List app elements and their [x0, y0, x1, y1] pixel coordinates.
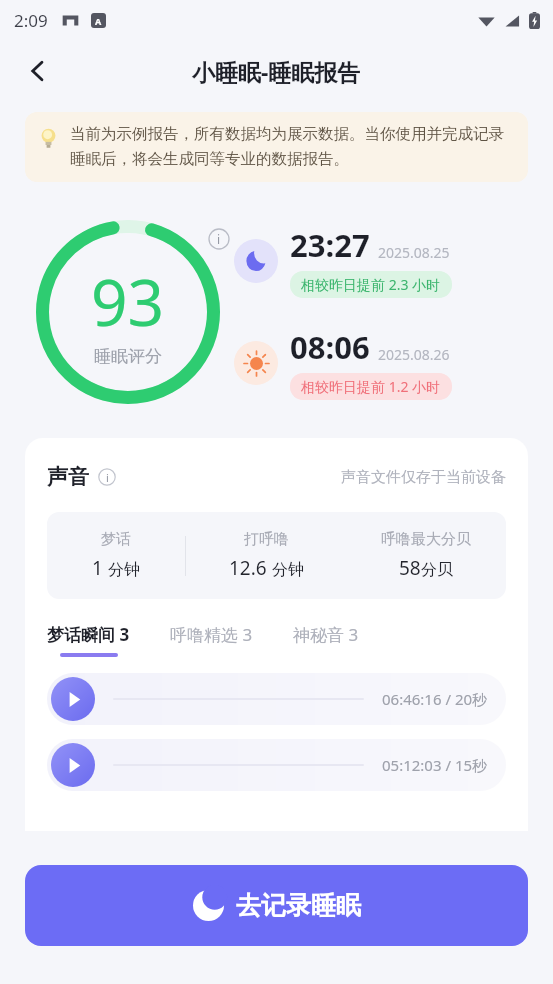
other: Play — [51, 677, 95, 721]
button[interactable]: 声音说明 — [96, 466, 118, 488]
staticText: 08:06 — [290, 326, 370, 368]
staticText: i — [217, 231, 221, 247]
staticText: A — [95, 15, 102, 27]
button[interactable]: Back — [14, 47, 62, 95]
staticText: 去记录睡眠 — [236, 890, 361, 921]
staticText: 睡眠评分 — [94, 346, 162, 367]
button[interactable]: 梦话瞬间 3 — [47, 623, 130, 657]
staticText: 05:12:03 / 15秒 — [382, 755, 488, 775]
staticText: 2025.08.25 — [378, 243, 450, 262]
staticText: 2:09 — [14, 9, 48, 32]
staticText: i — [106, 470, 109, 485]
button[interactable]: 神秘音 3 — [293, 623, 359, 657]
staticText: 小睡眠-睡眠报告 — [192, 56, 361, 87]
staticText: 相较昨日提前 2.3 小时 — [301, 275, 441, 294]
staticText: 神秘音 3 — [293, 623, 359, 646]
staticText: 12.6 — [229, 555, 272, 581]
staticText: 23:27 — [290, 224, 370, 266]
button[interactable]: 呼噜精选 3 — [170, 623, 253, 657]
staticText: 分钟 — [272, 560, 304, 580]
staticText: 06:46:16 / 20秒 — [382, 689, 488, 709]
staticText: 分贝 — [421, 560, 453, 580]
staticText: 声音文件仅存于当前设备 — [341, 468, 506, 487]
button[interactable]: Play — [47, 739, 506, 791]
button[interactable]: 评分说明 — [206, 226, 232, 252]
staticText: 93 — [91, 258, 165, 345]
staticText: 2025.08.26 — [378, 345, 450, 364]
staticText: 分钟 — [108, 560, 140, 580]
staticText: 相较昨日提前 1.2 小时 — [301, 377, 441, 396]
staticText: 梦话 — [101, 530, 131, 549]
staticText: 呼噜精选 3 — [170, 623, 253, 646]
staticText: 打呼噜 — [244, 530, 289, 549]
button[interactable]: 去记录睡眠 — [25, 865, 528, 946]
staticText: 呼噜最大分贝 — [381, 530, 471, 549]
button[interactable]: Play — [47, 673, 506, 725]
staticText: 当前为示例报告，所有数据均为展示数据。当你使用并完成记录睡眠后，将会生成同等专业… — [70, 124, 512, 168]
other: Play — [51, 743, 95, 787]
staticText: 58 — [399, 555, 421, 581]
staticText: 声音 — [47, 464, 89, 490]
staticText: 梦话瞬间 3 — [47, 623, 130, 646]
staticText: 1 — [92, 555, 108, 581]
